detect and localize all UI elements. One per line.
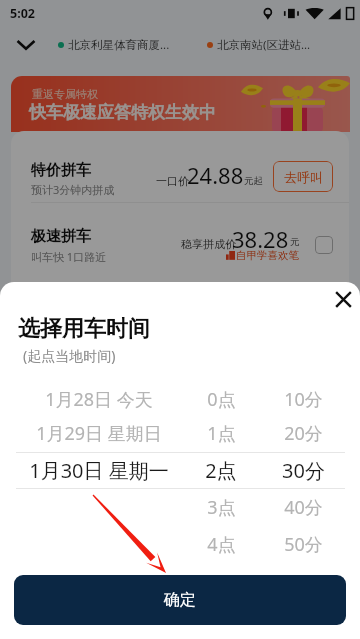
button[interactable]: Select option [315, 236, 333, 254]
staticText: 快车极速应答特权生效中 [29, 102, 216, 123]
button[interactable]: Expand route [17, 35, 35, 53]
staticText: 元 [290, 236, 300, 248]
staticText: 10分 [284, 387, 323, 412]
staticText: 叫车快 1口路近 [31, 249, 107, 264]
staticText: 北京南站(区进站... [217, 37, 311, 53]
staticText: 1月28日 今天 [45, 387, 153, 412]
staticText: 稳享拼成价 [181, 237, 236, 251]
staticText: 元起 [244, 175, 263, 187]
staticText: 自甲学喜欢笔 [236, 249, 299, 262]
staticText: 50分 [284, 532, 323, 557]
staticText: 38.28 [232, 224, 289, 254]
button[interactable]: 1月30日 星期一 [0, 454, 360, 486]
staticText: 去呼叫 [284, 169, 323, 185]
staticText: 1月30日 星期一 [29, 457, 169, 484]
staticText: 2点 [205, 457, 237, 484]
staticText: 3点 [207, 495, 236, 520]
staticText: 极速拼车 [31, 227, 91, 246]
staticText: 24.88 [187, 160, 244, 190]
staticText: 预计3分钟内拼成 [31, 182, 115, 197]
staticText: 重返专属特权 [32, 87, 98, 101]
staticText: 4点 [207, 532, 236, 557]
staticText: 40分 [284, 495, 323, 520]
staticText: (起点当地时间) [23, 346, 116, 365]
staticText: 特价拼车 [31, 161, 91, 180]
staticText: 1点 [207, 421, 236, 446]
staticText: 20分 [284, 421, 323, 446]
button[interactable]: 1月28日 今天 [0, 383, 360, 415]
button[interactable] [11, 203, 349, 271]
staticText: 北京利星体育商厦... [68, 37, 170, 53]
button[interactable]: 1月29日 星期日 [0, 417, 360, 449]
button[interactable]: 4点 [0, 528, 360, 560]
staticText: 确定 [164, 590, 196, 610]
button[interactable]: 3点 [0, 491, 360, 523]
button[interactable] [11, 131, 349, 202]
staticText: 30分 [282, 457, 325, 484]
button[interactable]: 去呼叫 [273, 161, 333, 192]
staticText: 一口价 [156, 174, 189, 188]
staticText: 0点 [207, 387, 236, 412]
staticText: 5:02 [10, 5, 35, 22]
button[interactable]: 确定 [14, 575, 346, 625]
staticText: 选择用车时间 [18, 315, 150, 343]
button[interactable]: Close [329, 285, 357, 313]
staticText: 1月29日 星期日 [36, 421, 162, 446]
